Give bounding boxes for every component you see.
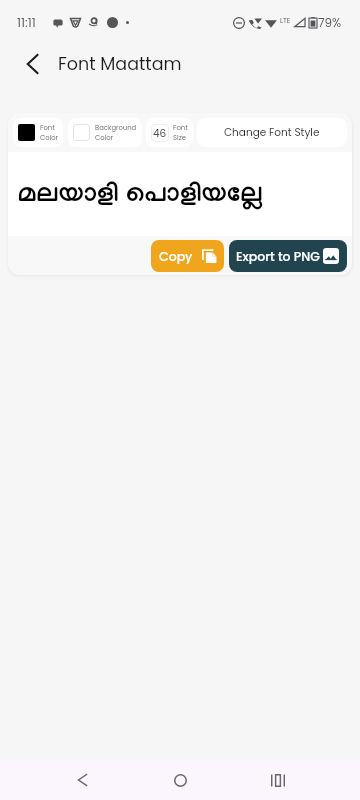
staticText: Background bbox=[95, 123, 137, 133]
button[interactable]: Font bbox=[13, 118, 63, 147]
button[interactable]: Copy bbox=[151, 240, 224, 272]
staticText: Export to PNG bbox=[236, 248, 320, 265]
staticText: Font Maattam bbox=[58, 52, 182, 77]
staticText: Change Font Style bbox=[224, 125, 320, 140]
staticText: LTE bbox=[280, 16, 291, 26]
button[interactable]: 46 bbox=[146, 118, 193, 147]
staticText: 11:11 bbox=[17, 14, 36, 31]
staticText: 46 bbox=[153, 126, 167, 141]
staticText: Copy bbox=[159, 248, 193, 265]
staticText: Color bbox=[95, 133, 114, 143]
staticText: 79% bbox=[318, 14, 342, 31]
button[interactable]: Export to PNG bbox=[229, 240, 347, 272]
button[interactable]: Background bbox=[68, 118, 142, 147]
staticText: Size bbox=[173, 133, 186, 143]
button[interactable]: Back bbox=[13, 45, 51, 83]
staticText: Font bbox=[40, 123, 55, 133]
staticText: മലയാളി പൊളിയല്ലേ bbox=[18, 181, 263, 213]
button[interactable]: Home bbox=[148, 760, 212, 800]
button[interactable]: Back bbox=[50, 760, 114, 800]
staticText: Color bbox=[40, 133, 58, 143]
staticText: Font bbox=[173, 123, 188, 133]
button[interactable]: Change Font Style bbox=[197, 118, 347, 147]
button[interactable]: Recent apps bbox=[246, 760, 310, 800]
